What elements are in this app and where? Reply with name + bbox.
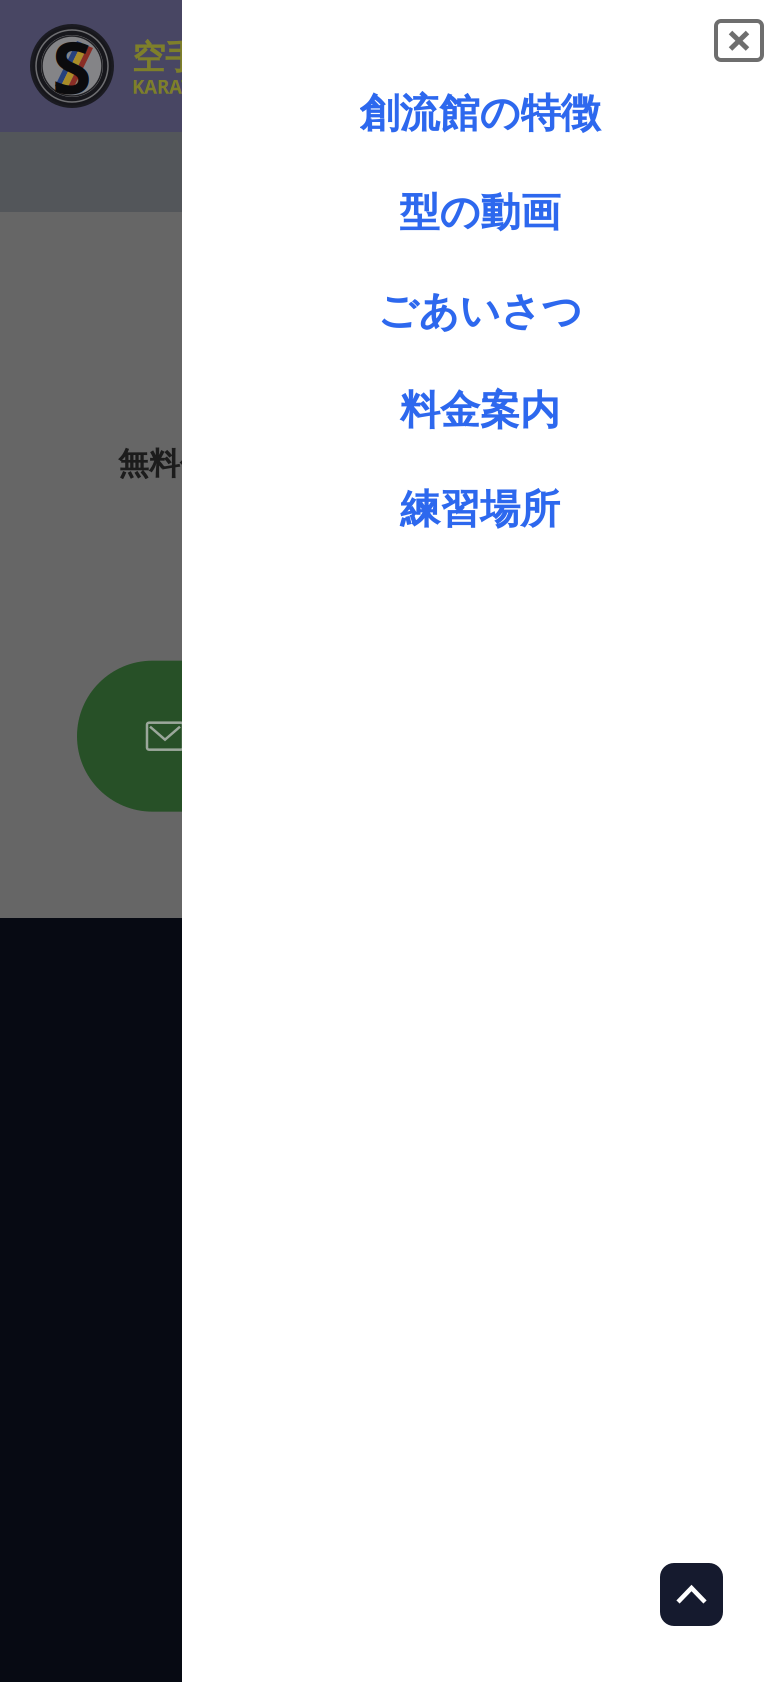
button[interactable]: 創流館の特徴: [182, 64, 778, 163]
button[interactable]: 型の動画: [182, 163, 778, 262]
staticText: ごあいさつ: [377, 287, 582, 336]
staticText: 無料体験実施中: [118, 445, 335, 483]
button[interactable]: 料金案内: [182, 361, 778, 460]
staticText: 創流館の特徴: [359, 89, 600, 138]
staticText: 練習場所: [400, 485, 560, 534]
staticText: S: [52, 18, 92, 114]
button[interactable]: 練習場所: [182, 460, 778, 559]
button[interactable]: ごあいさつ: [182, 262, 778, 361]
staticText: 型の動画: [399, 188, 560, 237]
button[interactable]: Close menu: [716, 21, 762, 60]
staticText: 料金案内: [400, 386, 560, 435]
staticText: KARATE SOURYUKAN: [132, 74, 324, 99]
staticText: 空手道創流館: [132, 37, 330, 78]
button[interactable]: お問い合わせはこちら: [77, 661, 621, 812]
button[interactable]: Back to top: [660, 1563, 723, 1626]
